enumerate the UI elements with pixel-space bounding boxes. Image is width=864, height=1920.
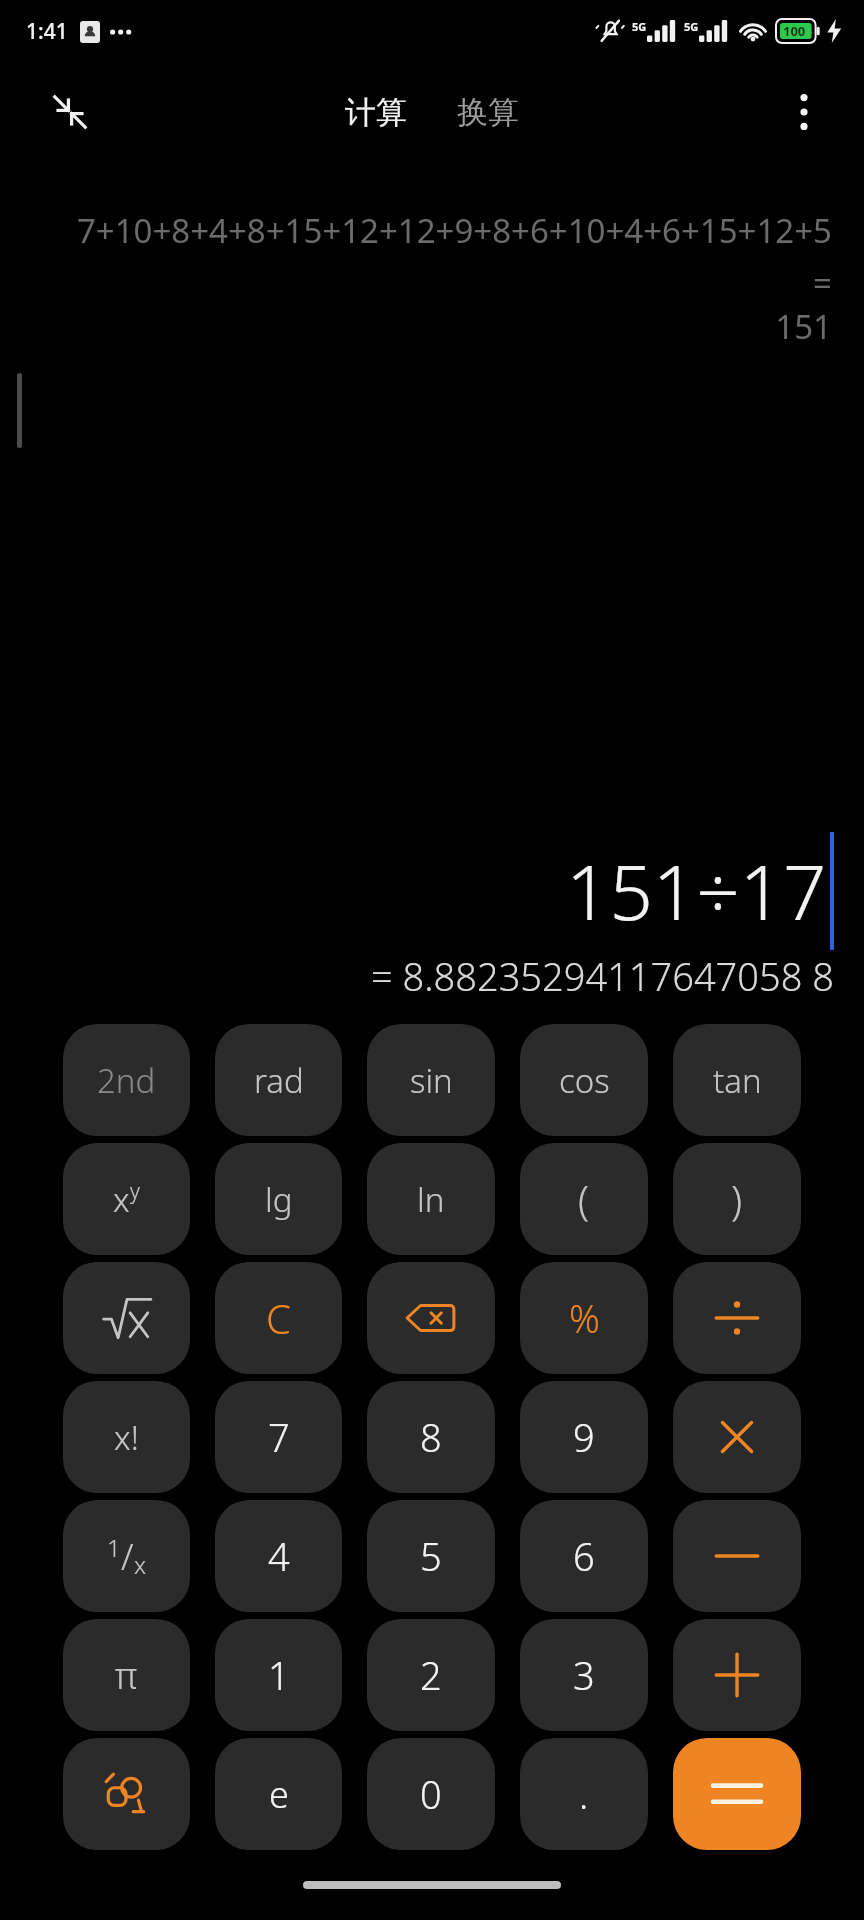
button[interactable]: x [63, 1143, 190, 1255]
staticText: 4 [268, 1530, 290, 1582]
button[interactable]: Plus [673, 1619, 801, 1731]
button[interactable]: sin [367, 1024, 495, 1136]
staticText: tan [713, 1058, 762, 1103]
staticText: rad [254, 1058, 304, 1103]
staticText: ln [417, 1177, 445, 1222]
button[interactable]: 2 [367, 1619, 495, 1731]
staticText: π [115, 1651, 138, 1700]
staticText: C [266, 1291, 291, 1345]
staticText: 6 [573, 1530, 595, 1582]
button[interactable]: e [215, 1738, 342, 1850]
staticText: 0 [420, 1768, 442, 1820]
staticText: 2nd [97, 1058, 156, 1103]
staticText: 7+10+8+4+8+15+12+12+9+8+6+10+4+6+15+12+5… [60, 208, 832, 304]
button[interactable]: 3 [520, 1619, 648, 1731]
button[interactable]: More options [776, 84, 832, 140]
button[interactable]: π [63, 1619, 190, 1731]
button[interactable]: x! [63, 1381, 190, 1493]
staticText: x! [114, 1415, 139, 1460]
button[interactable]: rad [215, 1024, 342, 1136]
button[interactable]: 8 [367, 1381, 495, 1493]
staticText: sin [410, 1058, 453, 1103]
button[interactable]: 9 [520, 1381, 648, 1493]
staticText: 计算 [345, 93, 407, 132]
button[interactable]: . [520, 1738, 648, 1850]
staticText: 151 [775, 304, 832, 349]
staticText: 151÷17 [566, 839, 827, 943]
staticText: x [113, 1177, 130, 1222]
button[interactable]: tan [673, 1024, 801, 1136]
staticText: 2 [420, 1649, 442, 1701]
staticText: lg [265, 1177, 293, 1222]
staticText: 5G [684, 19, 699, 34]
button[interactable]: Divide [673, 1262, 801, 1374]
button[interactable]: Backspace [367, 1262, 495, 1374]
staticText: 1 [268, 1649, 290, 1701]
staticText: = 8.88235294117647058 8 [371, 950, 834, 1002]
staticText: 1 [107, 1531, 121, 1564]
staticText: 1:41 [26, 17, 68, 46]
button[interactable]: 151÷17 [0, 832, 834, 950]
staticText: 9 [573, 1411, 595, 1463]
button[interactable]: 6 [520, 1500, 648, 1612]
button[interactable]: Square root [63, 1262, 190, 1374]
button[interactable]: cos [520, 1024, 648, 1136]
staticText: 100 [783, 22, 806, 40]
staticText: e [269, 1770, 289, 1819]
staticText: ( [578, 1172, 590, 1226]
staticText: ) [731, 1172, 743, 1226]
staticText: 换算 [457, 93, 519, 132]
button[interactable]: 5 [367, 1500, 495, 1612]
staticText: cos [559, 1058, 610, 1103]
button[interactable]: 4 [215, 1500, 342, 1612]
staticText: y [130, 1177, 140, 1206]
staticText: x [134, 1548, 147, 1581]
button[interactable]: ) [673, 1143, 801, 1255]
button[interactable]: 2nd [63, 1024, 190, 1136]
staticText: 5G [632, 19, 647, 34]
button[interactable]: 1 [215, 1619, 342, 1731]
button[interactable]: % [520, 1262, 648, 1374]
staticText: 8 [420, 1411, 442, 1463]
button[interactable]: Equals [673, 1738, 801, 1850]
button[interactable]: 7+10+8+4+8+15+12+12+9+8+6+10+4+6+15+12+5… [60, 208, 832, 349]
button[interactable]: 7 [215, 1381, 342, 1493]
button[interactable]: lg [215, 1143, 342, 1255]
staticText: . [579, 1768, 589, 1820]
staticText: 3 [573, 1649, 595, 1701]
button[interactable]: ln [367, 1143, 495, 1255]
button[interactable]: Unit conversion [63, 1738, 190, 1850]
button[interactable]: Multiply [673, 1381, 801, 1493]
button[interactable]: C [215, 1262, 342, 1374]
staticText: / [121, 1532, 134, 1581]
button[interactable]: 计算 [335, 85, 417, 140]
staticText: 5 [420, 1530, 442, 1582]
staticText: 7 [268, 1411, 290, 1463]
staticText: % [569, 1292, 600, 1344]
button[interactable]: 换算 [447, 85, 529, 140]
button[interactable]: ( [520, 1143, 648, 1255]
button[interactable]: Minus [673, 1500, 801, 1612]
button[interactable]: 1 [63, 1500, 190, 1612]
button[interactable]: 0 [367, 1738, 495, 1850]
button[interactable]: Collapse [40, 82, 100, 142]
